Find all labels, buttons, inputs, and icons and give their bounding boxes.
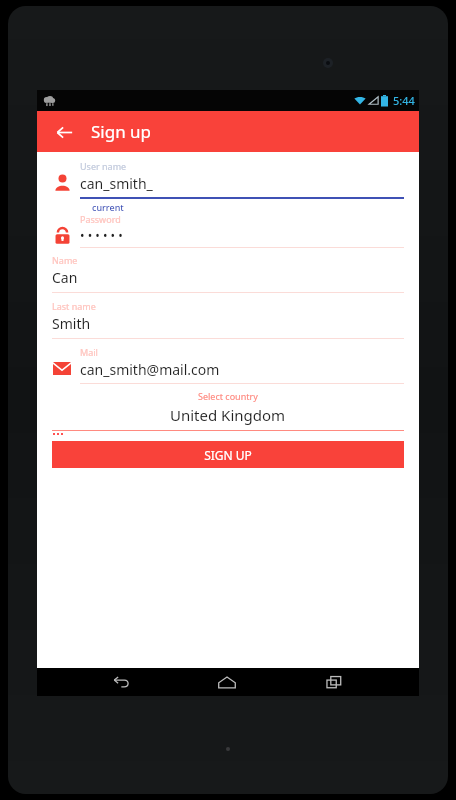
staticText: can_smith@mail.com xyxy=(80,360,220,379)
button[interactable]: Recent apps xyxy=(312,668,356,696)
button[interactable]: Password xyxy=(37,213,419,248)
button[interactable]: Last name xyxy=(37,300,419,339)
button[interactable]: Home xyxy=(205,668,249,696)
staticText: current xyxy=(92,201,124,213)
staticText: Password xyxy=(80,213,121,225)
staticText: Select country xyxy=(198,390,258,402)
button[interactable]: User name xyxy=(37,160,419,213)
staticText: Can xyxy=(52,268,78,287)
staticText: User name xyxy=(80,160,127,172)
button[interactable]: Name xyxy=(37,254,419,293)
staticText: 5:44 xyxy=(393,93,415,108)
staticText: Name xyxy=(52,254,78,266)
staticText: Last name xyxy=(52,300,96,312)
button[interactable]: Back xyxy=(99,668,143,696)
button[interactable]: Mail xyxy=(37,346,419,384)
button[interactable]: Back xyxy=(51,119,77,145)
button[interactable]: Select country xyxy=(37,390,419,431)
staticText: United Kingdom xyxy=(170,405,286,425)
staticText: Sign up xyxy=(91,120,152,143)
staticText: Mail xyxy=(80,346,98,358)
staticText: Smith xyxy=(52,314,91,333)
staticText: SIGN UP xyxy=(204,447,252,463)
button[interactable]: SIGN UP xyxy=(52,441,404,468)
staticText: can_smith_ xyxy=(80,174,153,193)
staticText: • • • • • • xyxy=(80,227,123,243)
